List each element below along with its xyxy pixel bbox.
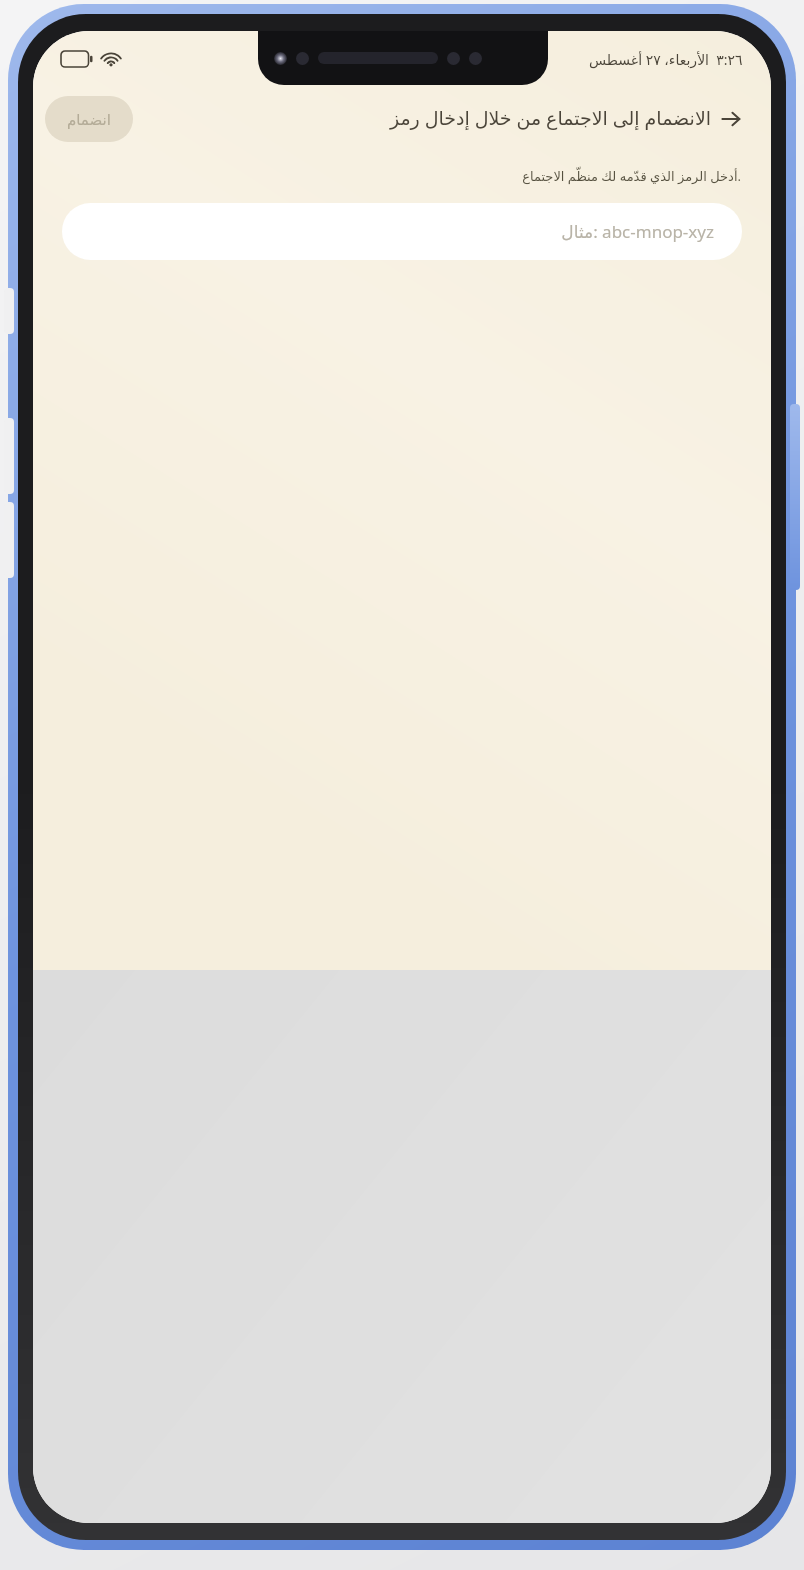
staticText: الانضمام إلى الاجتماع من خلال إدخال رمز (389, 105, 711, 131)
staticText: ٣:٢٦ الأربعاء، ٢٧ أغسطس (589, 50, 743, 69)
staticText: مثال: abc-mnop-xyz (561, 220, 714, 243)
staticText: انضمام (67, 111, 111, 128)
button[interactable]: مثال: abc-mnop-xyz (62, 203, 742, 260)
staticText: أدخل الرمز الذي قدّمه لك منظّم الاجتماع. (522, 167, 741, 185)
button[interactable]: انضمام (45, 96, 133, 142)
button[interactable]: رجوع (707, 95, 755, 143)
